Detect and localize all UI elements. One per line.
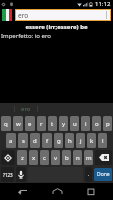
button[interactable]: d (30, 133, 40, 148)
button[interactable]: x (29, 150, 38, 165)
staticText: c (43, 154, 46, 162)
button[interactable]: f (42, 133, 52, 148)
other: Voice input (18, 170, 24, 179)
staticText: m (86, 154, 92, 162)
staticText: h (68, 137, 72, 145)
button[interactable]: s (18, 133, 28, 148)
staticText: f (46, 137, 49, 145)
button[interactable]: z (17, 150, 27, 165)
button[interactable]: u (70, 116, 79, 131)
staticText: o (95, 120, 99, 128)
button[interactable]: q (1, 116, 11, 131)
staticText: z (21, 154, 24, 162)
button[interactable]: i (81, 116, 90, 131)
staticText: p (106, 120, 110, 128)
staticText: y (62, 120, 66, 128)
button[interactable]: n (73, 150, 82, 165)
button[interactable]: m (84, 150, 93, 165)
button[interactable]: Recents (78, 183, 104, 200)
staticText: u (73, 120, 77, 128)
staticText: g (57, 137, 61, 145)
button[interactable]: Home (44, 183, 70, 200)
staticText: v (54, 154, 58, 162)
button[interactable]: k (87, 133, 96, 148)
button[interactable]: l (98, 133, 107, 148)
staticText: s (22, 137, 25, 145)
staticText: l (102, 137, 104, 145)
staticText: 11:12 (95, 0, 111, 8)
button[interactable]: w (13, 116, 23, 131)
button[interactable]: Backspace (95, 150, 112, 165)
button[interactable]: t (48, 116, 57, 131)
staticText: ?123 (3, 172, 13, 178)
button[interactable]: ?123 (1, 167, 14, 182)
staticText: Done (97, 171, 110, 178)
button[interactable]: y (59, 116, 68, 131)
staticText: t (51, 120, 54, 128)
button[interactable]: ero (15, 9, 111, 21)
staticText: d (33, 137, 37, 145)
button[interactable]: . (85, 167, 92, 182)
other: Backspace (99, 154, 109, 161)
button[interactable]: j (76, 133, 85, 148)
staticText: ero (18, 11, 29, 20)
button[interactable]: e (25, 116, 35, 131)
other: Shift (4, 154, 12, 162)
staticText: b (65, 154, 69, 162)
button[interactable]: Back (9, 183, 35, 200)
staticText: r (40, 120, 43, 128)
staticText: a (9, 137, 13, 145)
button[interactable]: Voice input (16, 167, 26, 182)
staticText: n (76, 154, 80, 162)
button[interactable]: g (54, 133, 63, 148)
button[interactable]: p (103, 116, 112, 131)
button[interactable]: Italian (2, 9, 12, 21)
button[interactable]: r (37, 116, 46, 131)
staticText: x (32, 154, 36, 162)
button[interactable]: c (40, 150, 49, 165)
staticText: essere (irr;essere) be (0, 23, 113, 31)
button[interactable]: h (65, 133, 74, 148)
button[interactable]: b (62, 150, 71, 165)
button[interactable]: Shift (1, 150, 15, 165)
staticText: j (80, 137, 82, 145)
staticText: ero (21, 105, 31, 113)
staticText: w (16, 120, 21, 128)
button[interactable]: Done (94, 168, 112, 181)
staticText: e (28, 120, 32, 128)
staticText: q (4, 120, 8, 128)
staticText: . (88, 171, 90, 178)
button[interactable]: o (92, 116, 101, 131)
button[interactable]: a (6, 133, 16, 148)
staticText: k (90, 137, 94, 145)
staticText: i (85, 120, 87, 128)
staticText: Imperfetto: io ero (1, 32, 51, 40)
button[interactable]: v (51, 150, 60, 165)
button[interactable]: ero (15, 103, 37, 115)
